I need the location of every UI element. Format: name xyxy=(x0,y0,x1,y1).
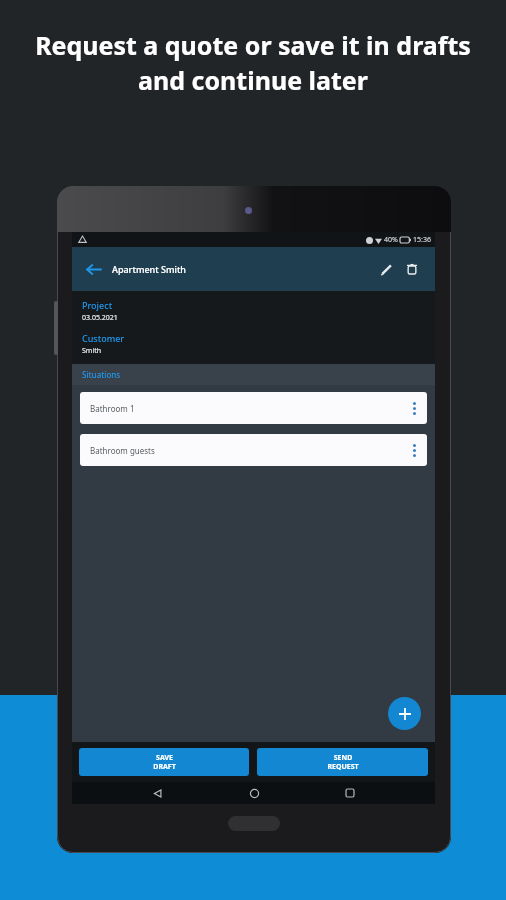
staticText: Customer xyxy=(82,332,125,344)
staticText: SEND REQUEST xyxy=(327,753,359,771)
staticText: Project xyxy=(82,299,113,311)
staticText: Situations xyxy=(82,369,121,380)
staticText: Bathroom guests xyxy=(90,445,401,456)
staticText: 40% xyxy=(384,235,398,245)
button[interactable]: Recents xyxy=(338,782,362,804)
button[interactable]: Bathroom guests xyxy=(80,434,427,466)
button[interactable]: More options xyxy=(401,392,427,424)
button[interactable]: SAVE DRAFT xyxy=(79,748,249,776)
staticText: Apartment Smith xyxy=(112,263,373,275)
button[interactable]: Bathroom 1 xyxy=(80,392,427,424)
staticText: Request a quote or save it in drafts and… xyxy=(26,28,480,98)
button[interactable]: Add situation xyxy=(388,697,421,730)
staticText: Bathroom 1 xyxy=(90,403,401,414)
staticText: SAVE DRAFT xyxy=(153,753,176,771)
button[interactable]: Back xyxy=(145,782,169,804)
button[interactable]: Back xyxy=(80,256,106,282)
staticText: Smith xyxy=(82,346,102,356)
button[interactable]: Edit xyxy=(373,256,399,282)
button[interactable]: More options xyxy=(401,434,427,466)
staticText: 15:36 xyxy=(413,235,431,245)
staticText: 03.05.2021 xyxy=(82,313,118,323)
button[interactable]: Home xyxy=(242,782,266,804)
button[interactable]: Delete xyxy=(399,256,425,282)
button[interactable]: SEND REQUEST xyxy=(257,748,428,776)
